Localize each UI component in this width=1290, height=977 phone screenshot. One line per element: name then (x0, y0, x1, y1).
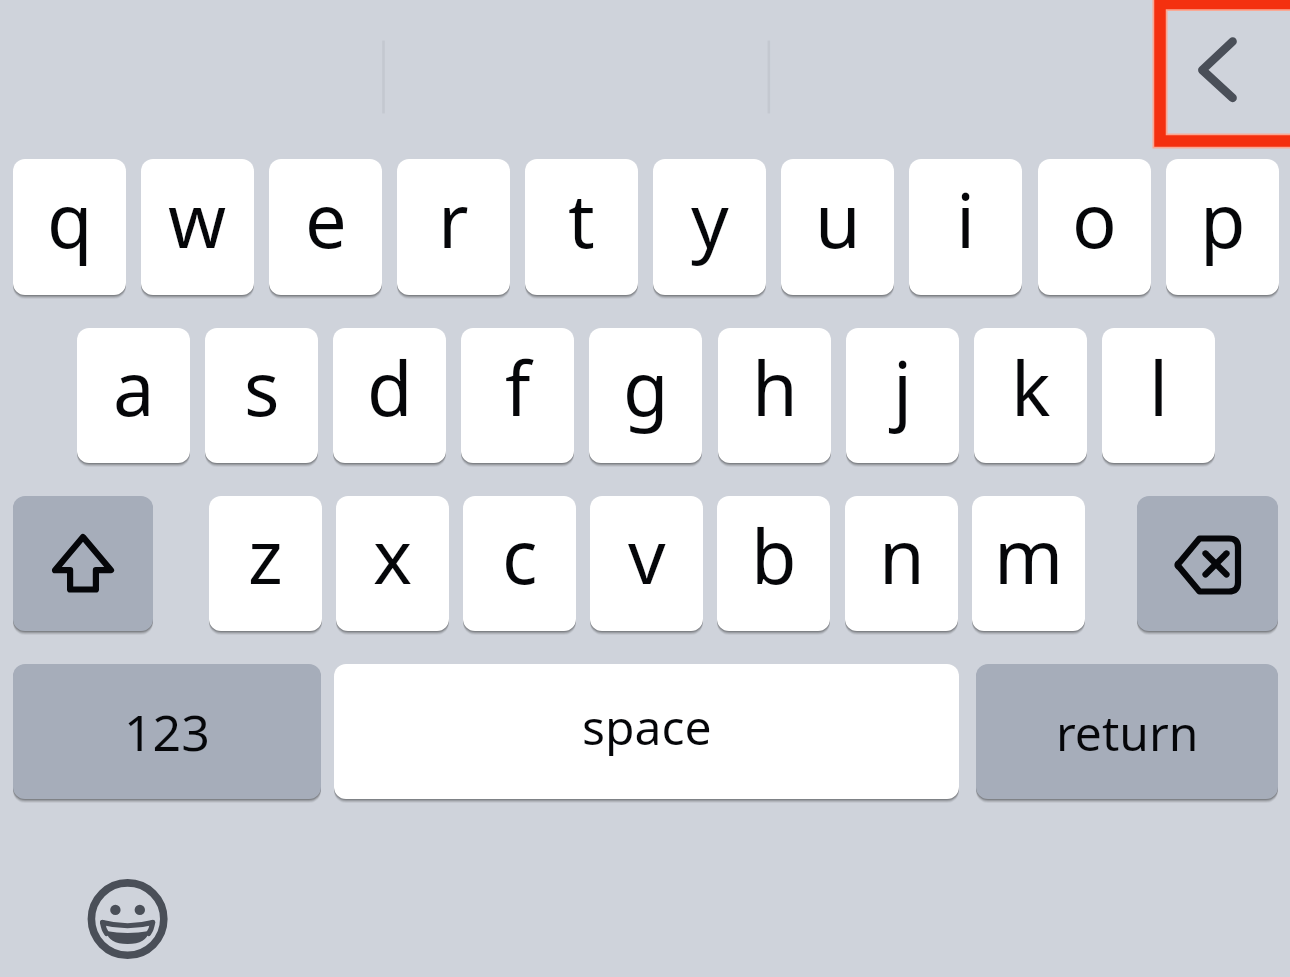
button[interactable]: m (972, 496, 1085, 631)
staticText: 123 (124, 698, 210, 766)
staticText: return (1056, 700, 1199, 765)
button[interactable]: q (13, 159, 126, 295)
staticText: h (752, 337, 798, 438)
button[interactable]: a (77, 328, 190, 463)
staticText: g (623, 337, 669, 438)
button[interactable]: x (336, 496, 449, 631)
staticText: v (628, 505, 666, 606)
staticText: o (1072, 169, 1117, 270)
staticText: z (248, 505, 283, 606)
staticText: q (47, 169, 93, 270)
button[interactable]: r (397, 159, 510, 295)
button[interactable]: u (781, 159, 894, 295)
staticText: u (815, 169, 861, 270)
staticText: a (113, 337, 155, 438)
button[interactable]: t (525, 159, 638, 295)
button[interactable]: return (976, 664, 1278, 799)
button[interactable]: 123 (13, 664, 321, 799)
button[interactable]: i (909, 159, 1022, 295)
staticText: f (505, 337, 531, 438)
button[interactable]: w (141, 159, 254, 295)
staticText: y (691, 169, 729, 270)
button[interactable]: z (209, 496, 322, 631)
button[interactable]: y (653, 159, 766, 295)
staticText: t (568, 169, 595, 270)
staticText: k (1011, 337, 1051, 438)
staticText: c (502, 505, 538, 606)
button[interactable]: s (205, 328, 318, 463)
button[interactable]: l (1102, 328, 1215, 463)
staticText: j (893, 337, 913, 438)
staticText: b (751, 505, 797, 606)
button[interactable]: Emoji keyboard (78, 869, 178, 969)
button[interactable]: d (333, 328, 446, 463)
button[interactable]: e (269, 159, 382, 295)
button[interactable]: f (461, 328, 574, 463)
staticText: r (438, 169, 469, 270)
staticText: m (994, 505, 1064, 606)
button[interactable]: Shift (13, 496, 153, 631)
staticText: e (305, 169, 347, 270)
button[interactable]: k (974, 328, 1087, 463)
staticText: space (582, 694, 712, 759)
staticText: w (168, 169, 227, 270)
button[interactable]: Backspace (1137, 496, 1278, 631)
button[interactable]: v (590, 496, 703, 631)
button[interactable]: Back (1166, 10, 1284, 136)
staticText: i (956, 169, 976, 270)
button[interactable]: h (718, 328, 831, 463)
staticText: s (244, 337, 280, 438)
button[interactable]: g (589, 328, 702, 463)
button[interactable]: n (845, 496, 958, 631)
button[interactable]: p (1166, 159, 1279, 295)
button[interactable]: c (463, 496, 576, 631)
button[interactable]: o (1038, 159, 1151, 295)
staticText: x (373, 505, 413, 606)
staticText: p (1200, 169, 1246, 270)
button[interactable]: b (717, 496, 830, 631)
button[interactable]: j (846, 328, 959, 463)
button[interactable]: space (334, 664, 959, 799)
staticText: l (1149, 337, 1169, 438)
staticText: d (367, 337, 413, 438)
staticText: n (879, 505, 925, 606)
